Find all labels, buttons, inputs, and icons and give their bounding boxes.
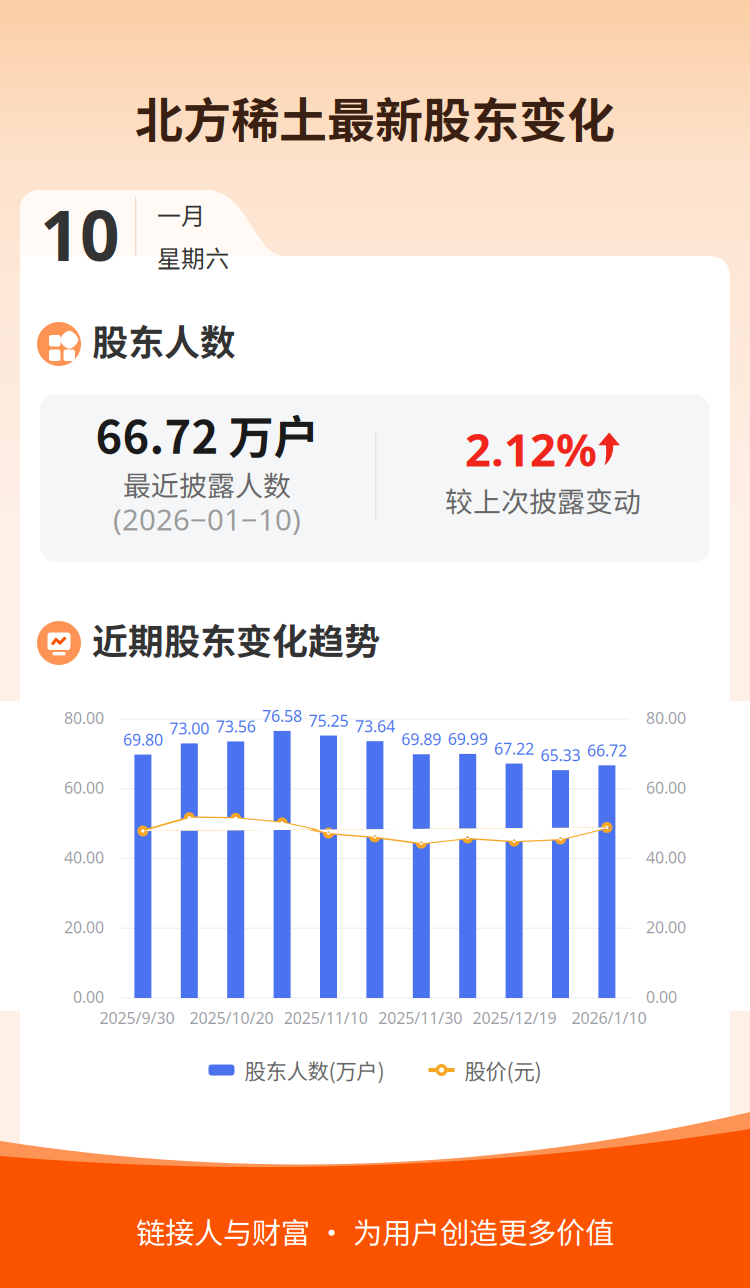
staticText: 76.58: [262, 705, 302, 727]
staticText: 2.12%: [465, 418, 597, 480]
staticText: 股价(元): [464, 1055, 541, 1085]
staticText: 股东人数(万户): [244, 1055, 384, 1085]
staticText: 最近披露人数: [123, 464, 291, 504]
staticText: (2026−01−10): [113, 499, 301, 539]
staticText: 2025/11/30: [378, 1007, 462, 1029]
staticText: 69.89: [401, 728, 441, 750]
staticText: 75.25: [308, 710, 348, 731]
staticText: 73.64: [355, 715, 395, 737]
staticText: 一月: [157, 197, 205, 232]
staticText: 69.99: [448, 728, 488, 750]
staticText: 链接人与财富 · 为用户创造更多价值: [136, 1210, 614, 1252]
staticText: 80.00: [64, 707, 104, 729]
staticText: 10: [40, 187, 120, 281]
staticText: 67.22: [494, 738, 534, 759]
staticText: 73.00: [169, 717, 209, 739]
staticText: 2025/11/10: [284, 1007, 368, 1029]
staticText: 星期六: [157, 240, 229, 275]
staticText: 20.00: [646, 916, 686, 938]
staticText: 60.00: [64, 777, 104, 799]
staticText: 40.00: [646, 846, 686, 868]
staticText: 北方稀土最新股东变化: [135, 82, 615, 152]
staticText: 66.72 万户: [95, 401, 318, 467]
staticText: 66.72: [587, 739, 627, 761]
staticText: 0.00: [646, 986, 677, 1008]
staticText: 40.00: [64, 846, 104, 868]
staticText: 较上次披露变动: [445, 480, 641, 520]
staticText: 股东人数: [92, 314, 236, 366]
staticText: 近期股东变化趋势: [92, 613, 380, 665]
staticText: 60.00: [646, 777, 686, 799]
staticText: 65.33: [540, 744, 580, 766]
staticText: 0.00: [73, 986, 104, 1008]
staticText: 2026/1/10: [571, 1007, 646, 1029]
staticText: 69.80: [123, 729, 163, 750]
staticText: 2025/10/20: [189, 1007, 273, 1029]
staticText: 80.00: [646, 707, 686, 729]
staticText: 20.00: [64, 916, 104, 938]
staticText: 73.56: [216, 715, 256, 737]
staticText: 2025/12/19: [473, 1007, 557, 1029]
staticText: 2025/9/30: [99, 1007, 174, 1029]
